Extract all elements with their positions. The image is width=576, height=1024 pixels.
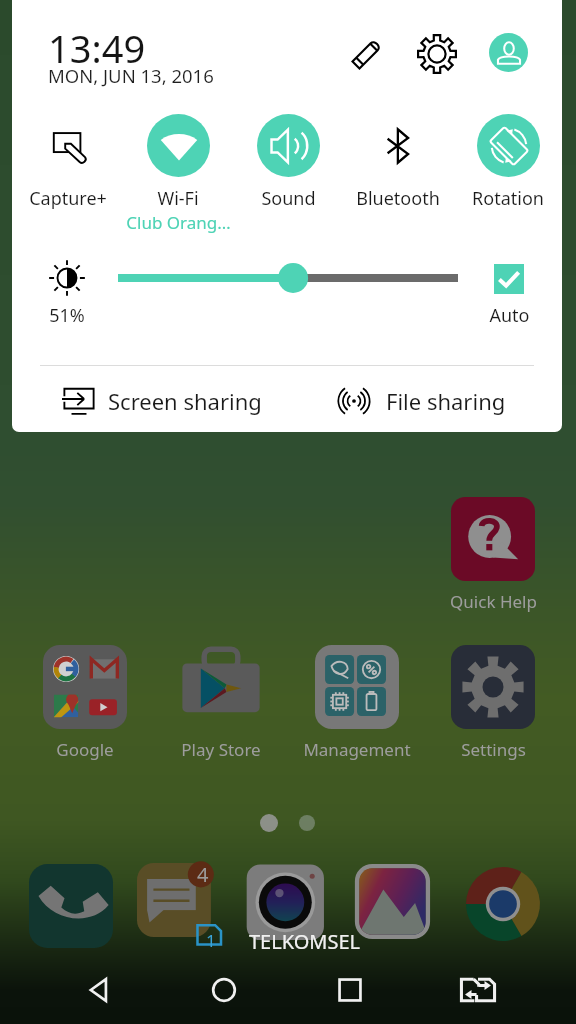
button[interactable]: File sharing xyxy=(322,372,552,430)
button[interactable]: User profile xyxy=(489,33,528,72)
button[interactable]: Settings xyxy=(425,641,561,764)
staticText: 4 xyxy=(197,861,209,887)
button[interactable]: Quick Help xyxy=(425,493,561,616)
staticText: Club Orang… xyxy=(126,211,231,234)
button[interactable]: Rotation xyxy=(453,106,562,210)
staticText: Google xyxy=(56,738,114,761)
button[interactable]: Edit xyxy=(341,28,393,80)
button[interactable]: Camera xyxy=(245,862,329,946)
button[interactable]: Google xyxy=(17,641,153,764)
button[interactable]: Screen sharing xyxy=(40,372,310,430)
button[interactable]: Settings xyxy=(411,28,463,80)
staticText: 1 xyxy=(206,929,216,952)
button[interactable]: Back xyxy=(66,958,130,1022)
button[interactable]: Messages xyxy=(137,858,221,942)
staticText: Quick Help xyxy=(450,590,537,613)
staticText: Play Store xyxy=(181,738,261,761)
staticText: Management xyxy=(303,738,411,761)
button[interactable]: Gallery xyxy=(353,862,437,946)
staticText: Sound xyxy=(261,186,316,211)
staticText: Settings xyxy=(461,738,526,761)
button[interactable]: Sound xyxy=(233,106,343,210)
button[interactable]: Dual window xyxy=(446,958,510,1022)
button[interactable]: Home xyxy=(192,958,256,1022)
staticText: Rotation xyxy=(472,186,544,211)
staticText: Screen sharing xyxy=(108,386,262,416)
staticText: Bluetooth xyxy=(356,186,440,211)
button[interactable]: Play Store xyxy=(153,641,289,764)
button[interactable]: Recents xyxy=(318,958,382,1022)
button[interactable]: Phone xyxy=(29,864,113,948)
staticText: 51% xyxy=(49,303,85,328)
button[interactable]: Management xyxy=(289,641,425,764)
button[interactable]: Capture+ xyxy=(13,106,123,210)
button[interactable]: Auto brightness xyxy=(494,264,524,294)
button[interactable]: Chrome xyxy=(461,862,545,946)
button[interactable]: Brightness xyxy=(112,262,464,294)
staticText: Capture+ xyxy=(29,186,107,211)
staticText: TELKOMSEL xyxy=(249,928,361,955)
button[interactable]: Bluetooth xyxy=(343,106,453,210)
staticText: Wi-Fi xyxy=(157,186,199,211)
staticText: Auto xyxy=(489,303,530,328)
staticText: MON, JUN 13, 2016 xyxy=(48,63,214,88)
staticText: 13:49 xyxy=(48,22,146,74)
staticText: File sharing xyxy=(386,386,506,416)
button[interactable]: Wi-Fi xyxy=(123,106,233,210)
